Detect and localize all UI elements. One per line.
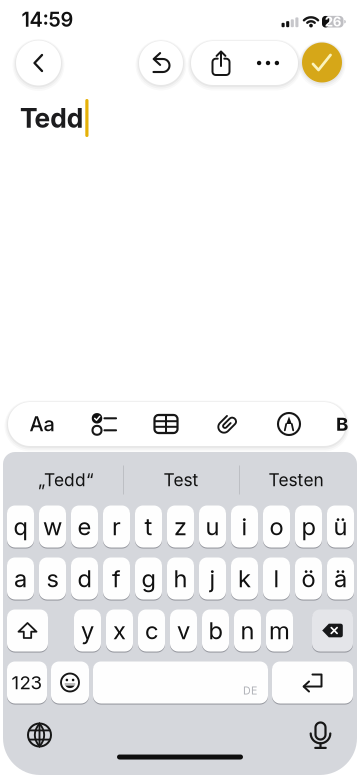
staticText: y xyxy=(81,616,94,645)
button[interactable]: b xyxy=(202,608,229,652)
staticText: B xyxy=(336,413,348,435)
button[interactable]: Attach xyxy=(205,402,249,446)
button[interactable]: p xyxy=(295,504,322,548)
button[interactable]: ö xyxy=(295,556,322,600)
staticText: j xyxy=(209,564,215,593)
button[interactable]: n xyxy=(234,608,261,652)
button[interactable]: Back xyxy=(16,40,61,85)
button[interactable]: Test xyxy=(126,460,236,500)
button[interactable]: Testen xyxy=(241,460,351,500)
staticText: t xyxy=(144,512,152,541)
button[interactable]: z xyxy=(167,504,194,548)
button[interactable]: More xyxy=(241,41,294,85)
staticText: v xyxy=(177,616,190,645)
staticText: w xyxy=(43,512,62,541)
button[interactable]: m xyxy=(266,608,293,652)
staticText: r xyxy=(112,512,121,541)
button[interactable]: ä xyxy=(327,556,354,600)
button[interactable]: w xyxy=(39,504,66,548)
button[interactable]: Dictate xyxy=(298,713,342,757)
staticText: l xyxy=(273,564,279,593)
staticText: k xyxy=(238,564,251,593)
button[interactable]: l xyxy=(263,556,290,600)
staticText: s xyxy=(46,564,58,593)
button[interactable] xyxy=(272,660,353,704)
button[interactable]: Markup xyxy=(267,402,311,446)
button[interactable]: 123 xyxy=(7,660,47,704)
button[interactable]: r xyxy=(103,504,130,548)
button[interactable]: ü xyxy=(327,504,354,548)
button[interactable]: c xyxy=(138,608,165,652)
staticText: „Tedd“ xyxy=(38,470,94,490)
button[interactable]: u xyxy=(199,504,226,548)
button[interactable]: Done xyxy=(302,42,342,82)
staticText: g xyxy=(141,564,155,593)
staticText: Test xyxy=(163,470,198,490)
button[interactable]: „Tedd“ xyxy=(11,460,121,500)
button[interactable]: k xyxy=(231,556,258,600)
button[interactable]: Battery 26 percent xyxy=(322,16,347,28)
staticText: u xyxy=(205,512,219,541)
staticText: c xyxy=(145,616,158,645)
staticText: d xyxy=(77,564,91,593)
button[interactable]: y xyxy=(74,608,101,652)
staticText: 14:59 xyxy=(21,8,73,31)
staticText: x xyxy=(113,616,126,645)
staticText: a xyxy=(14,564,27,593)
button[interactable]: i xyxy=(231,504,258,548)
staticText: Tedd xyxy=(20,102,84,134)
staticText: f xyxy=(112,564,121,593)
button[interactable]: Table xyxy=(144,402,188,446)
button[interactable]: h xyxy=(167,556,194,600)
staticText: DE xyxy=(243,684,257,697)
button[interactable]: f xyxy=(103,556,130,600)
staticText: 123 xyxy=(11,671,42,693)
button[interactable]: a xyxy=(7,556,34,600)
button[interactable]: t xyxy=(135,504,162,548)
button[interactable] xyxy=(312,608,353,652)
staticText: ü xyxy=(333,512,347,541)
staticText: h xyxy=(173,564,187,593)
button[interactable] xyxy=(51,660,89,704)
staticText: o xyxy=(269,512,283,541)
staticText: ä xyxy=(334,564,347,593)
staticText: Aa xyxy=(29,412,54,436)
staticText: i xyxy=(241,512,247,541)
button[interactable]: g xyxy=(135,556,162,600)
staticText: z xyxy=(174,512,187,541)
button[interactable]: q xyxy=(7,504,34,548)
button[interactable]: Share xyxy=(194,41,247,85)
button[interactable]: d xyxy=(71,556,98,600)
button[interactable]: Undo xyxy=(139,41,183,85)
button[interactable]: Checklist xyxy=(82,402,126,446)
button[interactable]: DE xyxy=(93,660,268,704)
staticText: Testen xyxy=(268,470,323,490)
button[interactable]: s xyxy=(39,556,66,600)
button[interactable]: x xyxy=(106,608,133,652)
button[interactable]: o xyxy=(263,504,290,548)
button[interactable]: e xyxy=(71,504,98,548)
button[interactable]: j xyxy=(199,556,226,600)
staticText: ö xyxy=(301,564,315,593)
staticText: m xyxy=(269,616,290,645)
staticText: e xyxy=(77,512,91,541)
staticText: q xyxy=(13,512,27,541)
button[interactable]: Format xyxy=(20,402,64,446)
staticText: b xyxy=(208,616,222,645)
button[interactable]: Bold xyxy=(332,402,352,446)
staticText: p xyxy=(301,512,315,541)
button[interactable]: v xyxy=(170,608,197,652)
staticText: 26 xyxy=(325,14,342,29)
button[interactable]: Next keyboard xyxy=(17,713,61,757)
staticText: n xyxy=(240,616,254,645)
button[interactable] xyxy=(7,608,48,652)
